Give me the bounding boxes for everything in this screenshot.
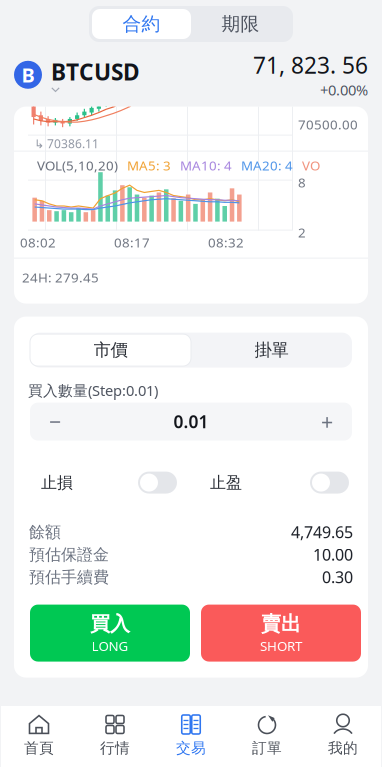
staticText: LONG bbox=[91, 637, 128, 655]
staticText: 行情 bbox=[100, 739, 130, 757]
button[interactable]: 掛單 bbox=[191, 334, 352, 366]
button[interactable]: 止盈 bbox=[210, 470, 349, 496]
staticText: MA10: 4 bbox=[180, 157, 232, 174]
staticText: 0.30 bbox=[322, 566, 353, 588]
staticText: B bbox=[21, 61, 34, 88]
button[interactable]: 交易 bbox=[153, 714, 229, 757]
staticText: 止損 bbox=[41, 473, 73, 492]
staticText: 70500.00 bbox=[298, 116, 358, 133]
button[interactable]: − bbox=[30, 403, 80, 441]
staticText: 買入 bbox=[90, 611, 130, 636]
staticText: 期限 bbox=[221, 12, 259, 35]
staticText: 08:17 bbox=[114, 234, 150, 251]
staticText: 止盈 bbox=[210, 473, 242, 492]
staticText: 我的 bbox=[328, 739, 358, 757]
staticText: 餘額 bbox=[29, 522, 61, 542]
staticText: 71, 823. 56 bbox=[253, 50, 368, 80]
staticText: 08:02 bbox=[20, 234, 56, 251]
staticText: 合約 bbox=[122, 12, 160, 35]
button[interactable]: 訂單 bbox=[229, 714, 305, 757]
button[interactable]: 止損 bbox=[41, 470, 177, 496]
staticText: 市價 bbox=[93, 339, 127, 361]
staticText: 預估保證金 bbox=[29, 545, 109, 564]
staticText: VOL(5,10,20) bbox=[37, 157, 118, 174]
staticText: 24H: 279.45 bbox=[22, 269, 99, 286]
staticText: 8 bbox=[298, 174, 306, 191]
staticText: VO bbox=[302, 157, 320, 174]
staticText: 首頁 bbox=[24, 739, 54, 757]
staticText: 0.01 bbox=[173, 410, 208, 433]
staticText: BTCUSD bbox=[51, 57, 140, 87]
button[interactable]: 合約 bbox=[92, 9, 191, 39]
button[interactable]: 市價 bbox=[30, 334, 191, 366]
button[interactable]: + bbox=[302, 403, 352, 441]
staticText: 交易 bbox=[176, 739, 206, 757]
staticText: 買入數量(Step:0.01) bbox=[28, 381, 158, 400]
staticText: ↳ 70386.11 bbox=[34, 136, 99, 151]
staticText: 4,749.65 bbox=[291, 521, 353, 543]
button[interactable]: 行情 bbox=[77, 714, 153, 757]
staticText: 10.00 bbox=[313, 544, 353, 565]
button[interactable]: 賣出 bbox=[201, 605, 361, 662]
button[interactable]: 首頁 bbox=[1, 714, 77, 757]
staticText: 訂單 bbox=[252, 739, 282, 757]
staticText: MA20: 4 bbox=[241, 157, 293, 174]
button[interactable]: 期限 bbox=[191, 9, 290, 39]
staticText: +0.00% bbox=[320, 80, 368, 100]
staticText: 預估手續費 bbox=[29, 567, 109, 587]
staticText: 賣出 bbox=[261, 611, 301, 636]
button[interactable]: 我的 bbox=[305, 714, 381, 757]
button[interactable]: 買入 bbox=[30, 605, 190, 662]
staticText: 2 bbox=[298, 224, 306, 241]
staticText: SHORT bbox=[260, 637, 302, 655]
staticText: + bbox=[321, 407, 333, 436]
staticText: − bbox=[49, 407, 61, 436]
staticText: 08:32 bbox=[208, 234, 244, 251]
staticText: MA5: 3 bbox=[127, 157, 171, 174]
button[interactable]: B bbox=[14, 57, 140, 93]
staticText: 掛單 bbox=[254, 339, 288, 361]
